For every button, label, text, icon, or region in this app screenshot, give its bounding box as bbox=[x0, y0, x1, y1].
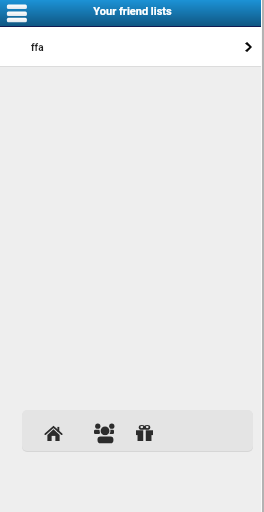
button[interactable]: Gifts bbox=[127, 416, 161, 450]
button[interactable]: Home bbox=[36, 416, 70, 450]
button[interactable]: Friends bbox=[87, 416, 121, 450]
staticText: ffa bbox=[31, 42, 44, 54]
button[interactable]: ffa bbox=[0, 27, 264, 67]
staticText: Your friend lists bbox=[93, 5, 172, 18]
button[interactable]: Menu bbox=[0, 0, 34, 27]
